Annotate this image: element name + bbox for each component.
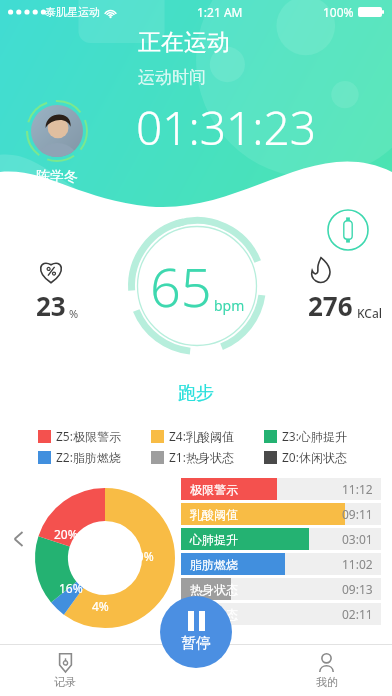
- staticText: 100%: [323, 4, 354, 20]
- staticText: 乳酸阈值: [190, 507, 238, 522]
- button[interactable]: 热身状态: [181, 578, 381, 600]
- staticText: 休闲状态: [190, 607, 238, 622]
- button[interactable]: 极限警示: [181, 478, 381, 500]
- staticText: 泰肌星运动: [45, 5, 100, 19]
- button[interactable]: Z2:脂肪燃烧: [38, 449, 151, 465]
- button[interactable]: 脂肪燃烧: [181, 553, 381, 575]
- staticText: 热身状态: [190, 582, 238, 597]
- staticText: 运动时间: [138, 67, 206, 88]
- staticText: 我的: [316, 675, 338, 689]
- staticText: 276: [308, 288, 353, 323]
- staticText: 陈学冬: [36, 168, 78, 186]
- staticText: 暂停: [181, 634, 211, 653]
- staticText: 02:11: [342, 606, 373, 622]
- staticText: 11:12: [342, 481, 373, 497]
- button[interactable]: Z0:休闲状态: [264, 449, 377, 465]
- staticText: 03:01: [342, 531, 373, 547]
- staticText: 脂肪燃烧: [190, 557, 238, 572]
- button[interactable]: 休闲状态: [181, 603, 381, 625]
- staticText: 1:21 AM: [197, 4, 243, 20]
- staticText: Z4:乳酸阈值: [169, 428, 234, 444]
- staticText: Z2:脂肪燃烧: [56, 449, 121, 465]
- staticText: 跑步: [178, 382, 214, 405]
- button[interactable]: Device: [327, 209, 369, 251]
- button[interactable]: Z1:热身状态: [151, 449, 264, 465]
- button[interactable]: Z4:乳酸阈值: [151, 428, 264, 444]
- staticText: 心肺提升: [190, 532, 238, 547]
- button[interactable]: 心肺提升: [181, 528, 381, 550]
- button[interactable]: Previous: [8, 528, 30, 550]
- staticText: 正在运动: [138, 28, 230, 57]
- staticText: %: [69, 306, 79, 321]
- button[interactable]: 暂停: [160, 596, 232, 668]
- staticText: 01:31:23: [136, 96, 317, 159]
- staticText: 16%: [59, 580, 83, 596]
- button[interactable]: 我的: [261, 648, 392, 693]
- staticText: 20%: [54, 526, 78, 542]
- staticText: 23: [36, 288, 66, 323]
- staticText: 4%: [92, 598, 109, 614]
- staticText: Z3:心肺提升: [282, 428, 347, 444]
- staticText: 记录: [54, 675, 76, 689]
- staticText: Z1:热身状态: [169, 449, 234, 465]
- button[interactable]: 乳酸阈值: [181, 503, 381, 525]
- button[interactable]: Z3:心肺提升: [264, 428, 377, 444]
- button[interactable]: Z5:极限警示: [38, 428, 151, 444]
- staticText: Z5:极限警示: [56, 428, 121, 444]
- button[interactable]: 记录: [0, 648, 130, 693]
- staticText: KCal: [357, 305, 383, 321]
- staticText: 11:02: [342, 556, 373, 572]
- staticText: 极限警示: [190, 482, 238, 497]
- staticText: bpm: [214, 296, 245, 315]
- staticText: 09:13: [342, 581, 373, 597]
- staticText: 09:11: [342, 506, 373, 522]
- staticText: 60%: [130, 548, 154, 564]
- staticText: 65: [150, 249, 212, 323]
- staticText: Z0:休闲状态: [282, 449, 347, 465]
